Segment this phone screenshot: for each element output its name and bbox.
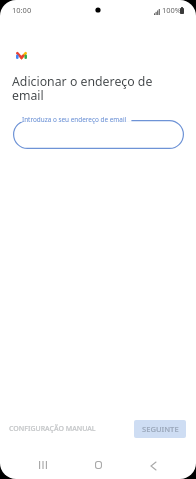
button[interactable]: Home: [84, 451, 112, 479]
staticText: SEGUINTE: [142, 424, 179, 434]
button[interactable]: Recents: [29, 451, 57, 479]
staticText: CONFIGURAÇÃO MANUAL: [9, 424, 96, 434]
button[interactable]: Introduza o seu endereço de email: [13, 112, 184, 149]
staticText: 100%: [162, 5, 182, 15]
staticText: 10:00: [12, 5, 32, 15]
staticText: Introduza o seu endereço de email: [22, 115, 127, 124]
button[interactable]: SEGUINTE: [134, 420, 186, 438]
button[interactable]: CONFIGURAÇÃO MANUAL: [4, 420, 101, 438]
staticText: Adicionar o endereço de email: [12, 73, 164, 104]
button[interactable]: Back: [139, 452, 167, 479]
